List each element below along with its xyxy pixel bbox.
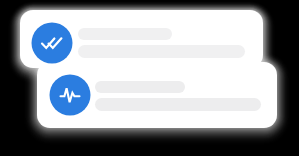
button[interactable]: Message and heart-rate cards	[0, 0, 299, 156]
